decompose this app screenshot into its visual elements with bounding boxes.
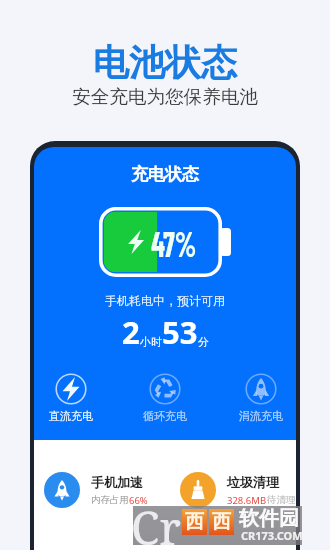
staticText: 循环充电 bbox=[143, 409, 187, 423]
button[interactable]: 直流充电 bbox=[41, 373, 101, 423]
staticText: 分 bbox=[198, 335, 209, 349]
staticText: 涓流充电 bbox=[239, 409, 283, 423]
button[interactable]: 手机加速 bbox=[44, 470, 172, 510]
staticText: 小时 bbox=[140, 335, 162, 349]
staticText: 西 bbox=[212, 510, 231, 534]
staticText: 安全充电为您保养电池 bbox=[72, 85, 258, 108]
staticText: 内存占用 bbox=[91, 494, 129, 506]
staticText: 53 bbox=[162, 311, 198, 353]
staticText: CR173.COM bbox=[241, 528, 303, 543]
staticText: 66% bbox=[129, 494, 148, 507]
staticText: 电池状态 bbox=[93, 40, 237, 85]
staticText: 手机加速 bbox=[91, 474, 143, 490]
staticText: Cr bbox=[131, 496, 181, 550]
button[interactable]: 垃圾清理 bbox=[180, 470, 296, 510]
staticText: 软件园 bbox=[239, 506, 299, 531]
staticText: 47% bbox=[151, 220, 197, 264]
staticText: 直流充电 bbox=[49, 409, 93, 423]
staticText: 手机耗电中，预计可用 bbox=[34, 293, 296, 308]
staticText: 2 bbox=[122, 311, 140, 353]
button[interactable]: 涓流充电 bbox=[231, 373, 291, 423]
button[interactable]: 循环充电 bbox=[135, 373, 195, 423]
staticText: 充电状态 bbox=[34, 164, 296, 185]
staticText: 西 bbox=[185, 510, 204, 534]
staticText: 待清理 bbox=[267, 494, 296, 506]
staticText: 328.6MB bbox=[227, 494, 267, 507]
staticText: 垃圾清理 bbox=[227, 474, 279, 490]
